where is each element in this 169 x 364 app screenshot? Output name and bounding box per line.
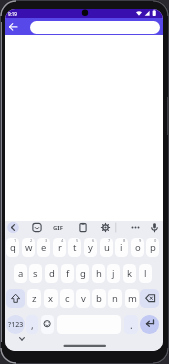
staticText: 7 [108, 238, 111, 243]
staticText: l [144, 267, 147, 280]
button[interactable]: c [60, 289, 74, 308]
button[interactable]: g [76, 264, 89, 283]
staticText: v [81, 292, 86, 305]
staticText: a [18, 267, 24, 280]
button[interactable]: q [6, 238, 19, 257]
button[interactable]: w [22, 238, 35, 257]
button[interactable] [140, 315, 159, 334]
button[interactable]: h [92, 264, 105, 283]
staticText: y [88, 241, 93, 254]
button[interactable] [140, 289, 159, 308]
button[interactable]: d [45, 264, 58, 283]
button[interactable]: ?123 [6, 315, 25, 334]
staticText: k [127, 267, 133, 280]
button[interactable]: f [61, 264, 74, 283]
staticText: 3 [45, 238, 48, 243]
staticText: . [130, 318, 133, 332]
staticText: h [96, 267, 102, 280]
button[interactable]: p [146, 238, 159, 257]
staticText: o [135, 241, 141, 254]
staticText: j [112, 267, 115, 280]
button[interactable]: u [100, 238, 113, 257]
button[interactable]: t [68, 238, 81, 257]
staticText: p [150, 241, 156, 254]
staticText: 9 [139, 238, 142, 243]
button[interactable] [7, 222, 19, 234]
staticText: GIF [53, 224, 63, 232]
staticText: 8 [123, 238, 126, 243]
staticText: e [41, 241, 47, 254]
staticText: 2 [30, 238, 33, 243]
staticText: c [65, 292, 70, 305]
staticText: 4 [61, 238, 64, 243]
staticText: r [58, 241, 62, 254]
staticText: 0 [154, 238, 157, 243]
button[interactable]: r [53, 238, 66, 257]
button[interactable]: e [37, 238, 50, 257]
button[interactable]: s [29, 264, 42, 283]
staticText: ?123 [8, 320, 24, 330]
staticText: u [104, 241, 110, 254]
button[interactable]: b [92, 289, 106, 308]
button[interactable]: v [76, 289, 90, 308]
button[interactable]: , [26, 315, 38, 334]
staticText: 5 [76, 238, 79, 243]
staticText: g [80, 267, 86, 280]
button[interactable] [30, 21, 160, 34]
staticText: i [120, 241, 123, 254]
staticText: w [25, 241, 33, 254]
button[interactable]: j [107, 264, 120, 283]
button[interactable]: n [108, 289, 122, 308]
button[interactable]: m [125, 289, 139, 308]
button[interactable]: . [124, 315, 138, 334]
button[interactable]: x [44, 289, 58, 308]
staticText: q [10, 241, 16, 254]
button[interactable]: k [123, 264, 136, 283]
staticText: s [33, 267, 38, 280]
staticText: x [48, 292, 54, 305]
button[interactable] [6, 289, 25, 308]
button[interactable]: z [27, 289, 41, 308]
staticText: b [96, 292, 102, 305]
button[interactable]: a [14, 264, 27, 283]
staticText: t [73, 241, 77, 254]
staticText: , [31, 318, 34, 332]
staticText: 6 [92, 238, 95, 243]
button[interactable]: o [131, 238, 144, 257]
staticText: f [66, 267, 70, 280]
staticText: 9:19 [8, 11, 17, 17]
staticText: z [32, 292, 37, 305]
staticText: n [112, 292, 118, 305]
staticText: d [49, 267, 55, 280]
button[interactable]: y [84, 238, 97, 257]
staticText: m [128, 292, 137, 305]
button[interactable] [41, 315, 54, 334]
button[interactable]: i [115, 238, 128, 257]
button[interactable]: l [139, 264, 152, 283]
staticText: 1 [14, 238, 17, 243]
